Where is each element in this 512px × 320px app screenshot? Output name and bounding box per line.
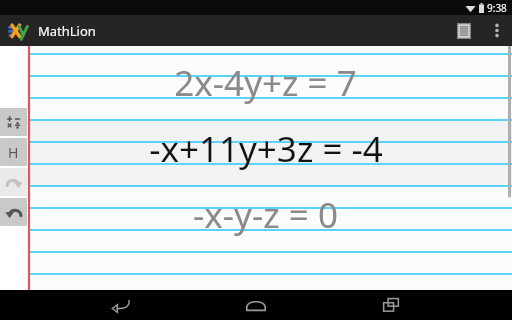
button[interactable]: Undo <box>0 198 27 226</box>
button[interactable]: Back <box>98 290 144 320</box>
staticText: H <box>8 143 19 162</box>
button[interactable]: App logo <box>7 20 29 42</box>
staticText: 2x-4y+z = 7 <box>174 59 357 107</box>
button[interactable]: Math operators <box>0 108 27 136</box>
button[interactable]: Hint <box>0 138 27 166</box>
button[interactable]: 2x-4y+z = 7 <box>29 50 502 116</box>
button[interactable]: Recent apps <box>368 290 414 320</box>
button[interactable]: -x+11y+3z = -4 <box>29 116 502 182</box>
button[interactable]: Home <box>233 290 279 320</box>
staticText: -x+11y+3z = -4 <box>149 125 383 173</box>
button[interactable]: Redo <box>0 168 27 196</box>
staticText: -x-y-z = 0 <box>193 191 338 239</box>
staticText: 9:38 <box>487 1 507 15</box>
staticText: MathLion <box>38 22 96 40</box>
button[interactable]: -x-y-z = 0 <box>29 182 502 248</box>
button[interactable]: Documents <box>446 15 482 46</box>
button[interactable]: More options <box>482 15 512 46</box>
